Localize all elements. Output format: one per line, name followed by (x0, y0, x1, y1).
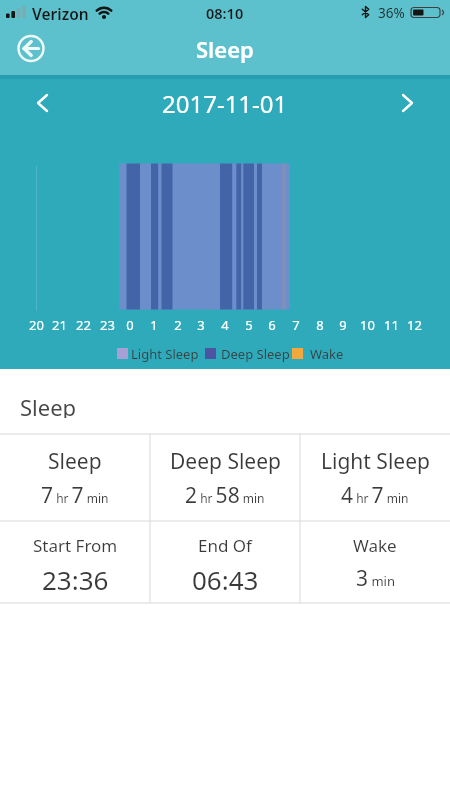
staticText: Sleep (48, 447, 102, 475)
staticText: 12 (407, 316, 422, 334)
staticText: 4 (221, 316, 229, 334)
staticText: 3 min (356, 564, 395, 593)
staticText: 20 (29, 316, 44, 334)
staticText: 36% (378, 4, 405, 22)
staticText: Sleep (196, 34, 254, 64)
staticText: 8 (316, 316, 324, 334)
staticText: 23 (100, 316, 115, 334)
staticText: 06:43 (192, 562, 259, 594)
staticText: 2 hr 58 min (185, 481, 265, 510)
staticText: 10 (360, 316, 375, 334)
button[interactable] (392, 89, 422, 119)
staticText: End Of (198, 534, 252, 557)
staticText: 0 (126, 316, 134, 334)
staticText: 2017-11-01 (162, 87, 288, 119)
staticText: 3 (197, 316, 205, 334)
staticText: 23:36 (42, 562, 109, 594)
staticText: Verizon (32, 3, 89, 24)
staticText: 6 (268, 316, 276, 334)
staticText: 22 (76, 316, 91, 334)
staticText: 08:10 (206, 3, 244, 23)
staticText: 5 (245, 316, 253, 334)
button[interactable] (28, 89, 58, 119)
staticText: 21 (52, 316, 67, 334)
staticText: Light Sleep (321, 447, 430, 475)
staticText: 2 (174, 316, 182, 334)
staticText: 7 hr 7 min (41, 481, 109, 510)
staticText: Deep Sleep (221, 345, 290, 363)
staticText: Wake (353, 534, 397, 557)
staticText: Wake (310, 345, 344, 363)
staticText: 7 (292, 316, 300, 334)
staticText: 1 (150, 316, 158, 334)
button[interactable] (14, 32, 48, 66)
staticText: Light Sleep (131, 345, 199, 363)
staticText: 4 hr 7 min (341, 481, 409, 510)
staticText: Start From (33, 534, 118, 557)
staticText: Sleep (20, 392, 77, 418)
staticText: 9 (339, 316, 347, 334)
staticText: 11 (384, 316, 399, 334)
staticText: Deep Sleep (170, 447, 281, 475)
